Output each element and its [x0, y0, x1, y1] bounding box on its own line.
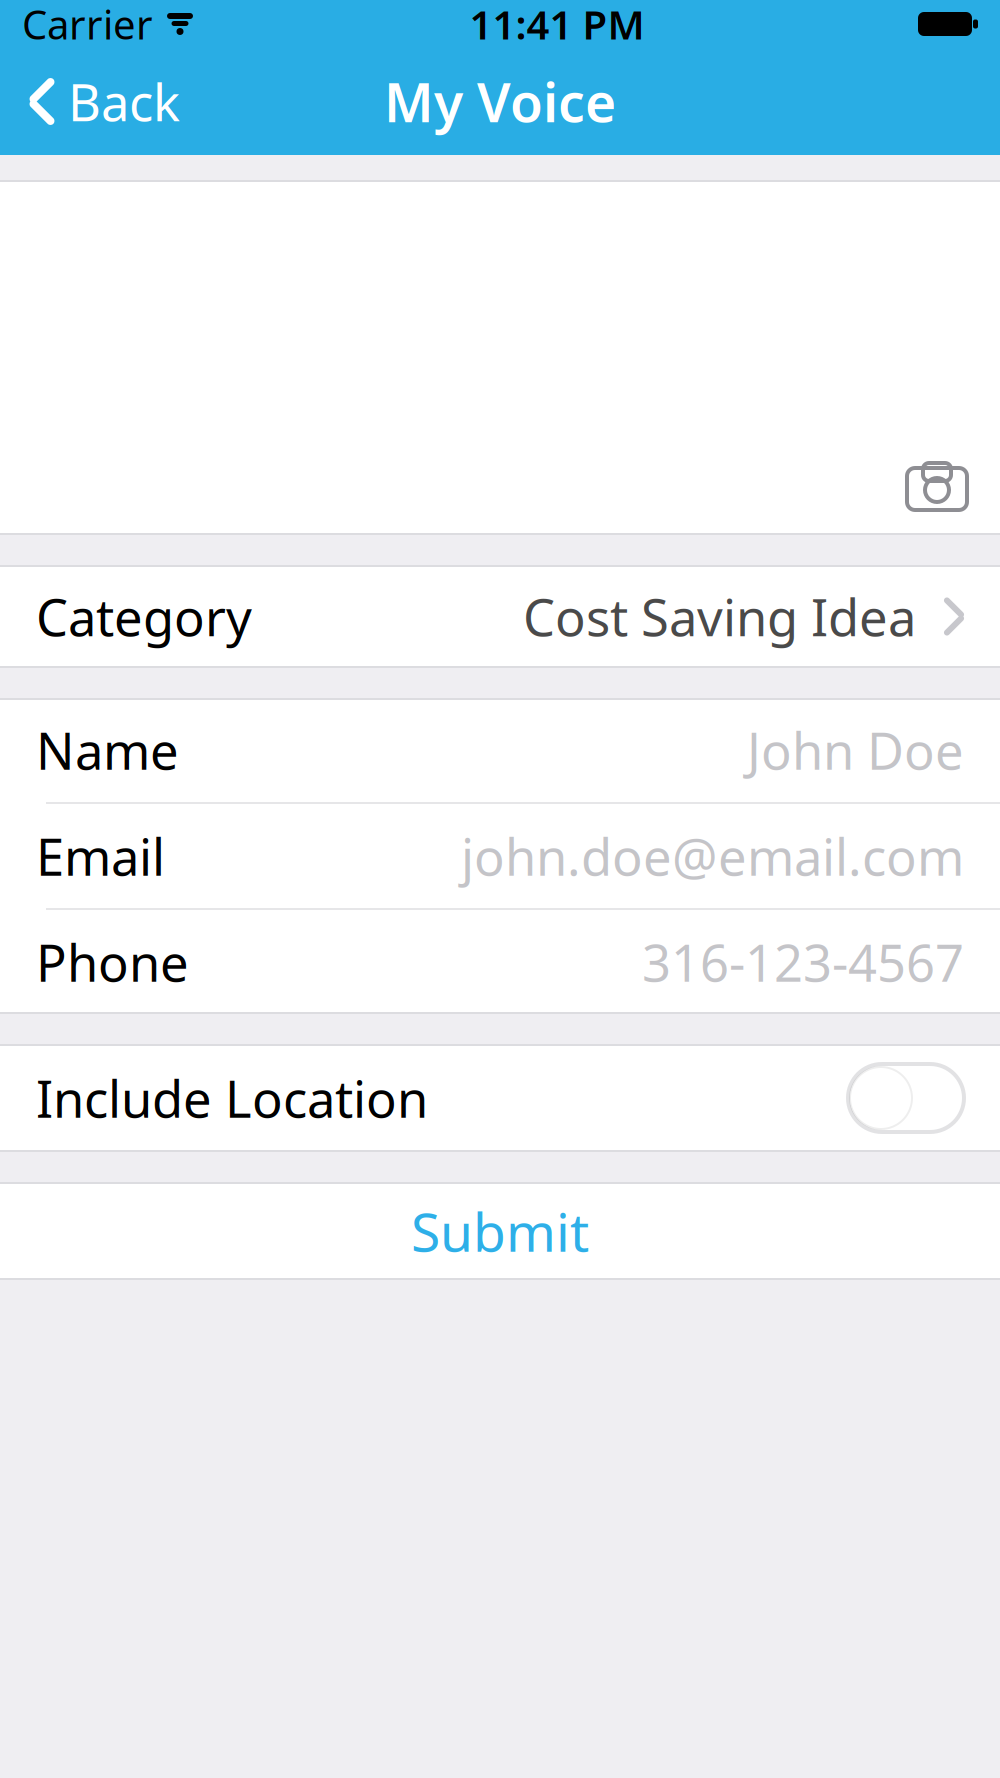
staticText: Phone [36, 928, 189, 996]
button[interactable]: Email [0, 804, 1000, 908]
staticText: Email [36, 822, 165, 890]
button[interactable]: Category [0, 565, 1000, 668]
staticText: Include Location [36, 1064, 428, 1132]
button[interactable]: Back [0, 48, 210, 155]
button[interactable]: Name [0, 698, 1000, 802]
staticText: Submit [411, 1196, 589, 1266]
staticText: My Voice [384, 66, 616, 137]
button[interactable]: Submit [0, 1182, 1000, 1280]
staticText: Carrier [22, 0, 153, 50]
button[interactable]: Include Location [0, 1044, 1000, 1152]
staticText: 11:41 PM [469, 0, 644, 50]
staticText: john.doe@email.com [461, 822, 964, 890]
staticText: Name [36, 716, 179, 784]
button[interactable]: Add photo [0, 180, 1000, 535]
staticText: 316-123-4567 [642, 928, 964, 996]
staticText: Cost Saving Idea [523, 583, 916, 650]
staticText: Category [36, 583, 252, 650]
staticText: John Doe [747, 716, 964, 784]
button[interactable]: Phone [0, 910, 1000, 1014]
staticText: Back [68, 68, 180, 135]
